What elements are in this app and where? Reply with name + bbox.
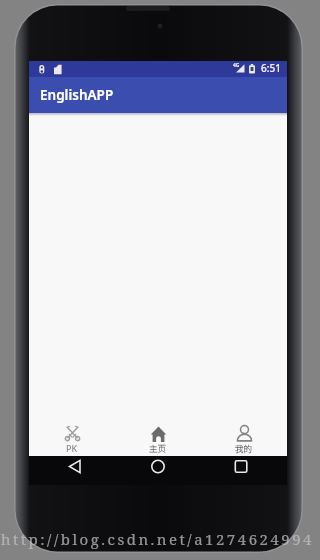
staticText: 4G — [233, 62, 240, 69]
staticText: PK — [66, 442, 78, 454]
button[interactable]: 我的 — [201, 420, 287, 456]
button[interactable] — [115, 456, 201, 485]
staticText: EnglishAPP — [40, 86, 114, 104]
staticText: 6:51 — [261, 61, 281, 75]
staticText: http://blog.csdn.net/a1274624994 — [1, 529, 314, 549]
staticText: 主页 — [149, 442, 167, 454]
staticText: 我的 — [235, 442, 253, 454]
button[interactable] — [201, 456, 287, 485]
button[interactable]: 主页 — [115, 420, 201, 456]
button[interactable] — [29, 456, 115, 485]
button[interactable]: PK — [29, 420, 115, 456]
